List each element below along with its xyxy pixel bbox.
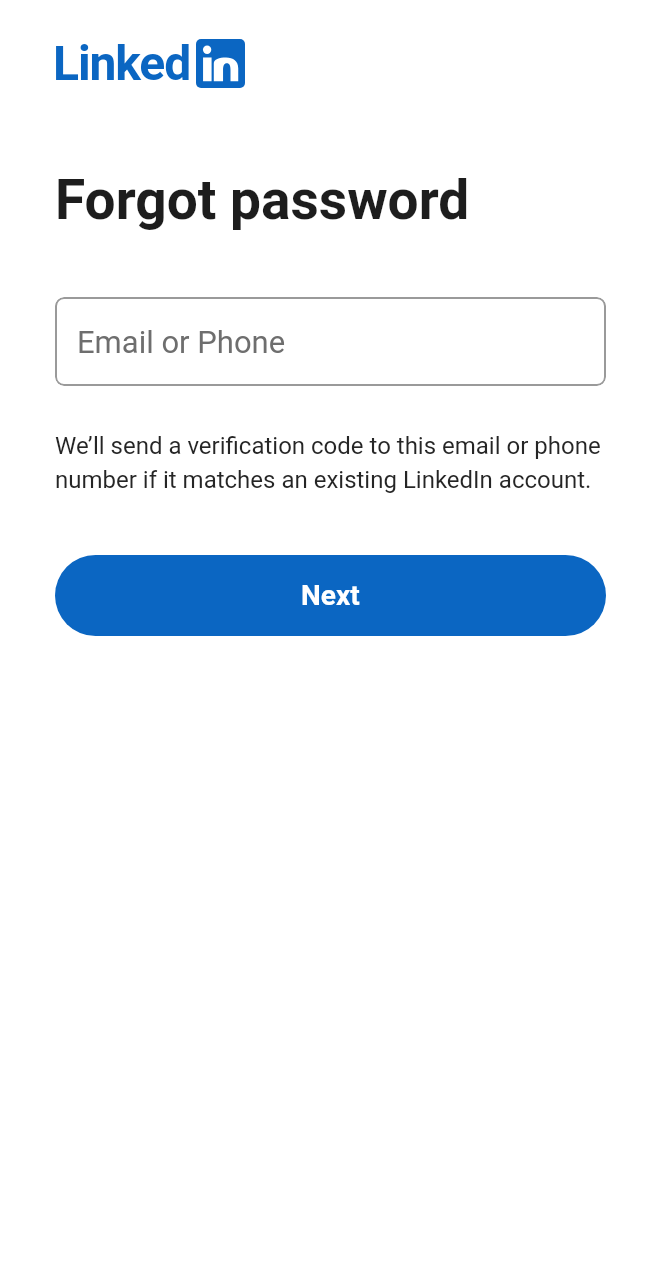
- button[interactable]: Next: [55, 555, 606, 636]
- staticText: Email or Phone: [77, 324, 286, 360]
- other: LinkedIn: [53, 35, 245, 91]
- staticText: Linked: [53, 35, 191, 91]
- staticText: Next: [301, 579, 360, 612]
- button[interactable]: Email or Phone: [55, 297, 606, 386]
- staticText: Forgot password: [55, 168, 470, 232]
- staticText: We’ll send a verification code to this e…: [55, 432, 606, 494]
